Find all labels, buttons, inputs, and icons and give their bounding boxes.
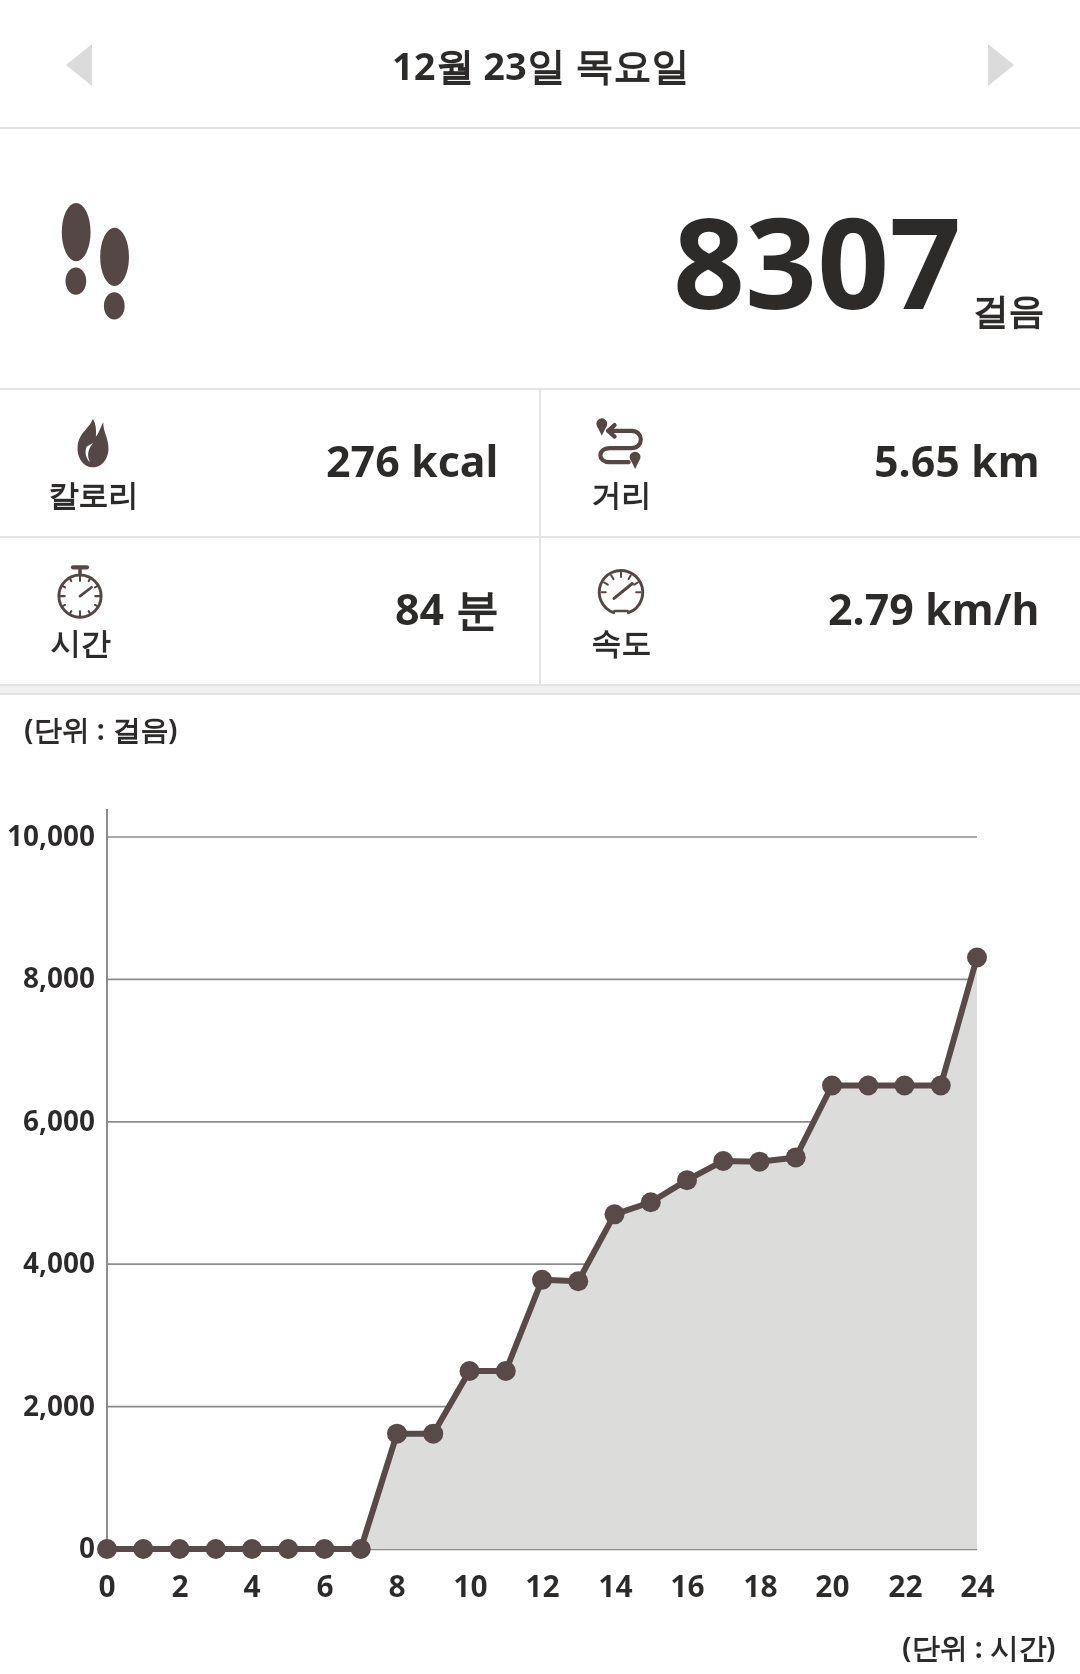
staticText: 8,000 [23, 958, 96, 996]
staticText: 4,000 [23, 1243, 96, 1281]
staticText: 2 [171, 1565, 189, 1606]
staticText: 20 [815, 1565, 850, 1606]
staticText: 8307 [673, 174, 962, 346]
button[interactable]: 시간 [0, 538, 539, 684]
staticText: 5.65 km [874, 431, 1040, 490]
staticText: 14 [598, 1565, 633, 1606]
staticText: 2.79 km/h [828, 579, 1040, 638]
staticText: 시간 [50, 625, 110, 663]
staticText: 6 [316, 1565, 334, 1606]
staticText: 8 [388, 1565, 406, 1606]
staticText: 16 [670, 1565, 705, 1606]
staticText: 22 [888, 1565, 923, 1606]
staticText: (단위 : 걸음) [24, 710, 178, 748]
button[interactable]: 칼로리 [0, 390, 539, 536]
staticText: 10,000 [7, 816, 96, 854]
button[interactable]: Next day [968, 32, 1034, 98]
staticText: 칼로리 [48, 477, 138, 515]
staticText: 6,000 [23, 1101, 96, 1139]
button[interactable]: 속도 [541, 538, 1080, 684]
staticText: 0 [79, 1528, 96, 1566]
staticText: 걸음 [972, 289, 1044, 334]
staticText: 속도 [591, 625, 651, 663]
staticText: 18 [743, 1565, 778, 1606]
button[interactable]: Previous day [46, 32, 112, 98]
staticText: 10 [453, 1565, 488, 1606]
button[interactable]: 8307 [0, 129, 1080, 390]
staticText: (단위 : 시간) [902, 1628, 1056, 1666]
staticText: 12 [525, 1565, 560, 1606]
staticText: 거리 [591, 477, 651, 515]
staticText: 2,000 [23, 1386, 96, 1424]
staticText: 12월 23일 목요일 [392, 39, 689, 91]
staticText: 4 [243, 1565, 261, 1606]
button[interactable]: 거리 [541, 390, 1080, 536]
staticText: 276 kcal [326, 431, 499, 490]
staticText: 0 [98, 1565, 116, 1606]
staticText: 84 분 [395, 579, 499, 638]
staticText: 24 [960, 1565, 995, 1606]
